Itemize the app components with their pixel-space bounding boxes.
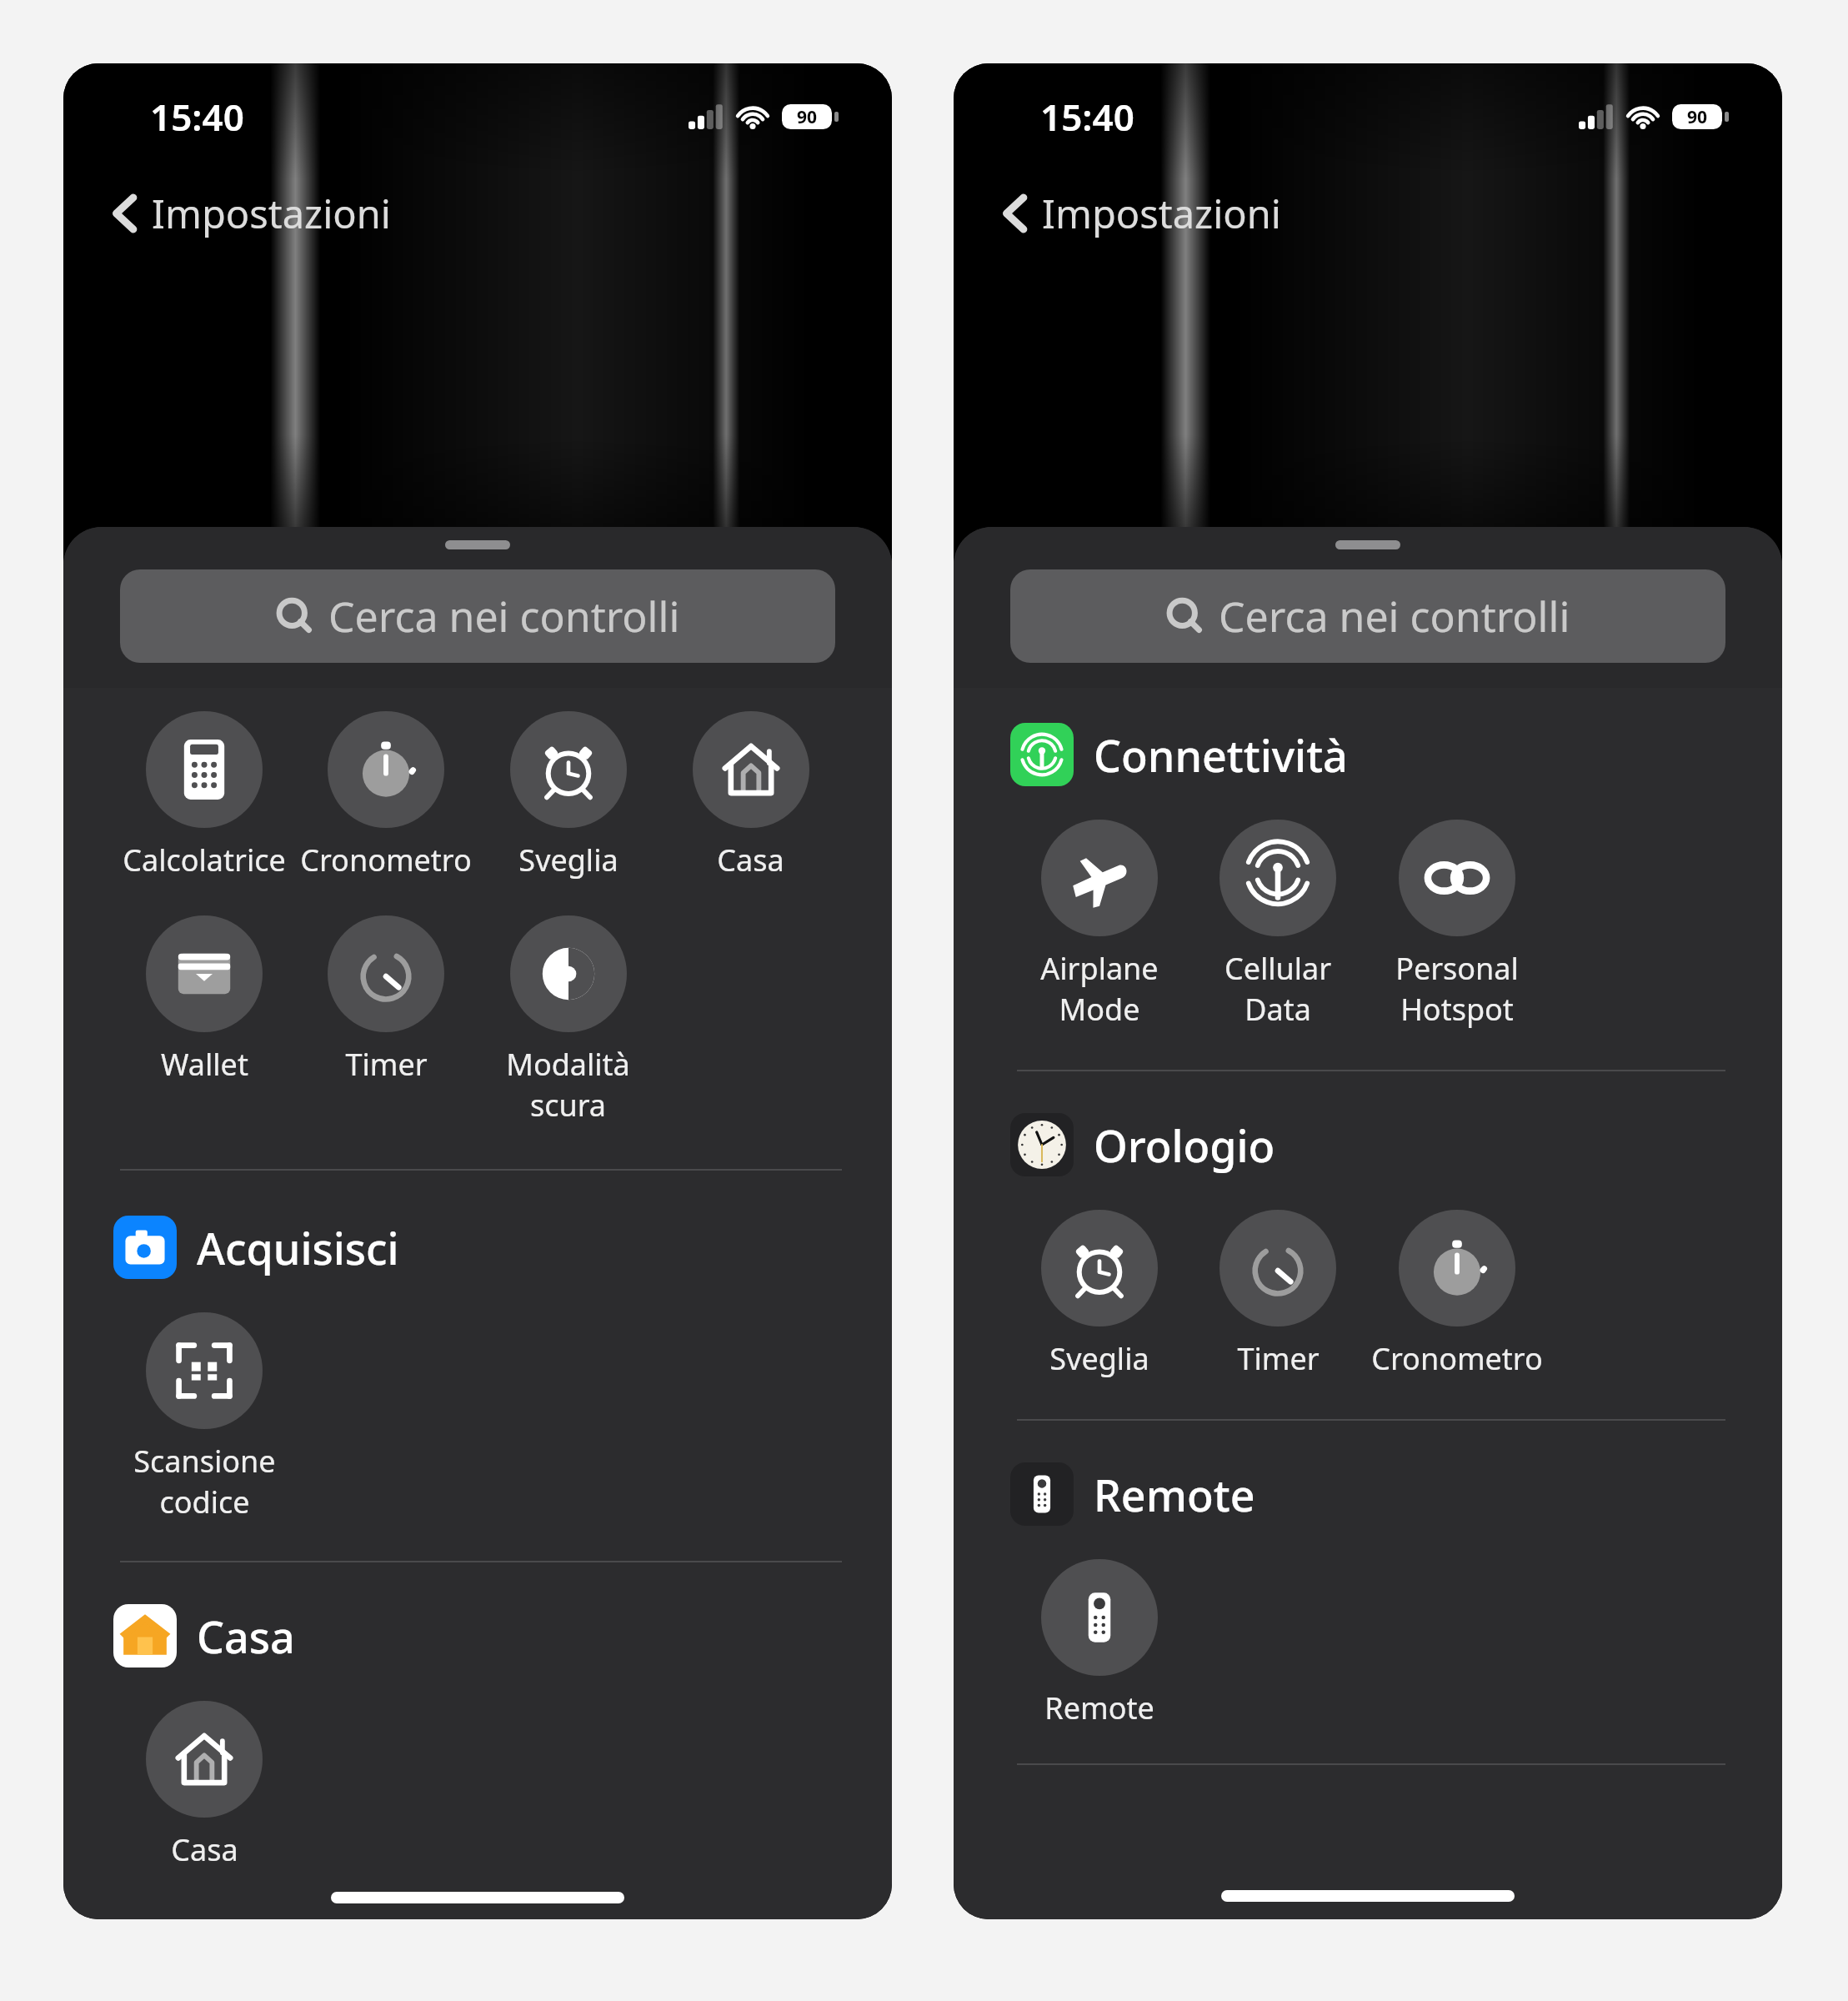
button[interactable]: Scansione codice bbox=[113, 1307, 295, 1527]
staticText: Timer bbox=[345, 1044, 428, 1085]
staticText: Connettività bbox=[1094, 725, 1348, 785]
button[interactable]: Acquisisci bbox=[113, 1209, 842, 1286]
staticText: Scansione codice bbox=[133, 1441, 276, 1522]
staticText: Cellular Data bbox=[1189, 948, 1367, 1030]
staticText: Airplane Mode bbox=[1040, 948, 1159, 1030]
button[interactable]: Cerca nei controlli bbox=[120, 569, 835, 663]
button[interactable]: Airplane Mode bbox=[1010, 815, 1189, 1035]
button[interactable]: Cellular Data bbox=[1189, 815, 1367, 1035]
other: Back bbox=[110, 193, 138, 234]
staticText: Cronometro bbox=[300, 840, 472, 880]
staticText: Cerca nei controlli bbox=[328, 588, 680, 644]
staticText: Modalità scura bbox=[506, 1044, 630, 1126]
button[interactable]: Orologio bbox=[1010, 1106, 1725, 1183]
staticText: Sveglia bbox=[1049, 1338, 1149, 1379]
staticText: Sveglia bbox=[518, 840, 619, 880]
button[interactable]: Casa bbox=[113, 1597, 842, 1674]
button[interactable]: Cronometro bbox=[295, 706, 477, 885]
staticText: Calcolatrice bbox=[123, 840, 286, 880]
button[interactable]: Sveglia bbox=[477, 706, 659, 885]
staticText: Remote bbox=[1044, 1688, 1154, 1728]
button[interactable]: Personal Hotspot bbox=[1367, 815, 1546, 1035]
button[interactable]: Back bbox=[98, 178, 403, 248]
button[interactable]: Cronometro bbox=[1367, 1205, 1546, 1384]
button[interactable]: Timer bbox=[1189, 1205, 1367, 1384]
button[interactable]: Remote bbox=[1010, 1554, 1189, 1733]
other: Back bbox=[1000, 193, 1029, 234]
staticText: Cerca nei controlli bbox=[1219, 588, 1570, 644]
button[interactable]: Timer bbox=[295, 910, 477, 1090]
staticText: Impostazioni bbox=[152, 187, 391, 240]
button[interactable]: Wallet bbox=[113, 910, 295, 1090]
button[interactable]: Calcolatrice bbox=[113, 706, 295, 885]
button[interactable]: Back bbox=[989, 178, 1293, 248]
button[interactable]: Sveglia bbox=[1010, 1205, 1189, 1384]
staticText: Timer bbox=[1237, 1338, 1320, 1379]
staticText: Acquisisci bbox=[197, 1218, 399, 1277]
staticText: Cronometro bbox=[1371, 1338, 1543, 1379]
staticText: Remote bbox=[1094, 1465, 1255, 1524]
button[interactable]: Modalità scura bbox=[477, 910, 659, 1131]
staticText: Orologio bbox=[1094, 1116, 1275, 1175]
staticText: Casa bbox=[717, 840, 784, 880]
staticText: 90 bbox=[1687, 105, 1708, 129]
staticText: Casa bbox=[171, 1829, 238, 1870]
button[interactable]: Cerca nei controlli bbox=[1010, 569, 1725, 663]
staticText: 15:40 bbox=[150, 92, 244, 142]
staticText: Casa bbox=[197, 1607, 295, 1666]
staticText: Wallet bbox=[161, 1044, 248, 1085]
button[interactable]: Casa bbox=[659, 706, 842, 885]
button[interactable]: Casa bbox=[113, 1696, 295, 1875]
staticText: 15:40 bbox=[1040, 92, 1134, 142]
button[interactable]: Connettività bbox=[1010, 716, 1725, 793]
staticText: Personal Hotspot bbox=[1395, 948, 1519, 1030]
button[interactable]: Remote bbox=[1010, 1456, 1725, 1532]
staticText: Impostazioni bbox=[1042, 187, 1281, 240]
staticText: 90 bbox=[797, 105, 818, 129]
